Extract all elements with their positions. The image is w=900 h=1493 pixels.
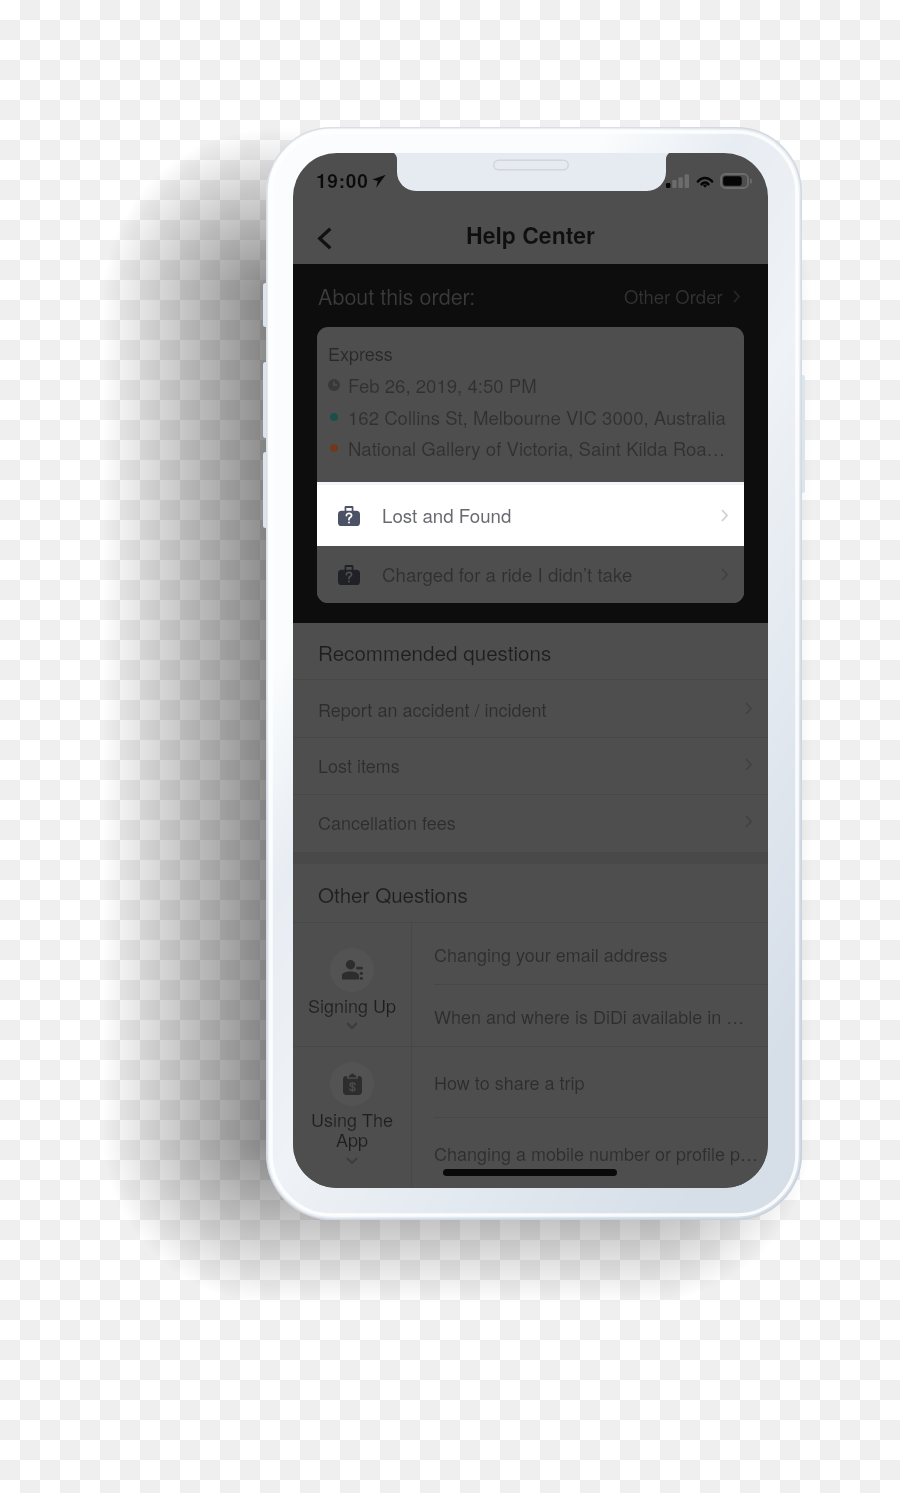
staticText: Report an accident / incident [318, 696, 547, 722]
staticText: Changing a mobile number or profile p… [434, 1140, 759, 1166]
button[interactable]: Charged for a ride I didn’t take [317, 546, 744, 603]
staticText: Lost and Found [382, 502, 512, 529]
button[interactable]: When and where is DiDi available in … [412, 985, 768, 1046]
button[interactable]: Report an accident / incident [293, 680, 768, 737]
staticText: Changing your email address [434, 941, 668, 967]
staticText: Other Questions [318, 879, 468, 908]
staticText: Using The App [306, 1106, 398, 1153]
button[interactable]: Using The App [293, 1047, 411, 1188]
staticText: 162 Collins St, Melbourne VIC 3000, Aust… [348, 404, 726, 431]
staticText: Express [328, 340, 393, 366]
button[interactable]: Back [303, 216, 347, 260]
staticText: Signing Up [306, 992, 398, 1018]
button[interactable]: Cancellation fees [293, 793, 768, 850]
button[interactable]: Lost items [293, 736, 768, 793]
staticText: Feb 26, 2019, 4:50 PM [348, 372, 537, 399]
button[interactable]: How to share a trip [412, 1047, 768, 1117]
staticText: How to share a trip [434, 1069, 585, 1095]
staticText: Other Order [624, 283, 723, 309]
staticText: Lost items [318, 752, 400, 778]
staticText: Cancellation fees [318, 809, 456, 835]
button[interactable]: Lost and Found [317, 485, 744, 546]
staticText: Charged for a ride I didn’t take [382, 561, 633, 588]
button[interactable]: Changing your email address [412, 923, 768, 984]
staticText: About this order: [318, 280, 476, 311]
staticText: Recommended questions [318, 637, 552, 666]
staticText: 19:00 [316, 167, 369, 194]
button[interactable]: Signing Up [293, 923, 411, 1046]
button[interactable]: Other Order [624, 283, 740, 309]
staticText: When and where is DiDi available in … [434, 1003, 745, 1029]
staticText: National Gallery of Victoria, Saint Kild… [348, 435, 726, 462]
staticText: Help Center [293, 218, 768, 251]
button[interactable]: Changing a mobile number or profile p… [412, 1118, 768, 1188]
